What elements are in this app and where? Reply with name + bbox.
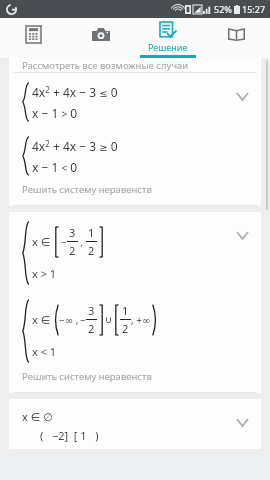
staticText: , xyxy=(78,236,86,248)
staticText: − xyxy=(61,235,67,249)
staticText: x ∈ xyxy=(32,312,51,327)
staticText: 15:27 xyxy=(242,3,266,15)
staticText: − xyxy=(80,313,86,327)
staticText: x ∈ ∅ xyxy=(22,409,53,424)
button[interactable]: x ∈ xyxy=(9,212,261,290)
other: Развернуть xyxy=(233,87,251,105)
staticText: x ∈ xyxy=(32,234,51,249)
staticText: 2 xyxy=(88,243,95,258)
other: Развернуть xyxy=(233,226,251,244)
staticText: ( −2] [ 1 ) xyxy=(40,428,99,443)
button[interactable]: Калькулятор xyxy=(0,18,67,58)
staticText: 3 xyxy=(88,303,95,318)
button[interactable]: x ∈ xyxy=(9,290,261,393)
staticText: x − 1 < 0 xyxy=(32,159,78,175)
staticText: x − 1 > 0 xyxy=(32,105,78,121)
staticText: 1 xyxy=(88,225,95,240)
staticText: 2 xyxy=(88,321,95,336)
button[interactable]: Камера xyxy=(67,18,134,58)
button[interactable]: Учебник xyxy=(202,18,270,58)
staticText: 4x2 + 4x − 3 ≤ 0 xyxy=(32,84,118,100)
staticText: 52% xyxy=(214,3,232,15)
staticText: 3 xyxy=(69,225,76,240)
staticText: Решить систему неравенств xyxy=(22,370,152,383)
staticText: ∪ xyxy=(105,314,113,326)
staticText: x > 1 xyxy=(32,266,57,281)
staticText: −∞ , xyxy=(59,313,79,327)
staticText: 1 xyxy=(122,303,129,318)
button[interactable]: 4x2 + 4x − 3 ≥ 0 xyxy=(9,127,261,206)
other: Развернуть xyxy=(233,413,251,431)
staticText: Рассмотреть все возможные случаи xyxy=(22,59,189,72)
staticText: Решение xyxy=(148,41,188,53)
staticText: Решить систему неравенств xyxy=(22,183,152,196)
staticText: 2 xyxy=(122,321,129,336)
staticText: 2 xyxy=(69,243,76,258)
staticText: 4x2 + 4x − 3 ≥ 0 xyxy=(32,138,118,154)
staticText: , +∞ xyxy=(131,313,151,327)
button[interactable]: Решение xyxy=(134,18,202,58)
staticText: x < 1 xyxy=(32,344,57,359)
button[interactable]: x ∈ ∅ xyxy=(9,399,261,449)
button[interactable]: 4x2 + 4x − 3 ≤ 0 xyxy=(9,73,261,127)
